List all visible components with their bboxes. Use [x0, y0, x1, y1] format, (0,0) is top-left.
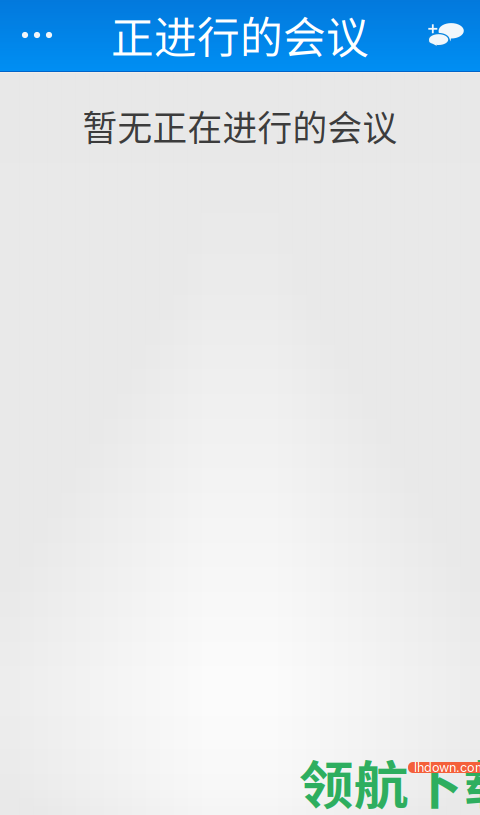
button[interactable]: New meeting	[420, 13, 476, 57]
staticText: 领航下载	[299, 745, 480, 815]
staticText: 正进行的会议	[111, 4, 369, 66]
button[interactable]: More options	[6, 12, 68, 58]
staticText: 暂无正在进行的会议	[82, 101, 397, 151]
staticText: lhdown.com	[414, 760, 480, 775]
